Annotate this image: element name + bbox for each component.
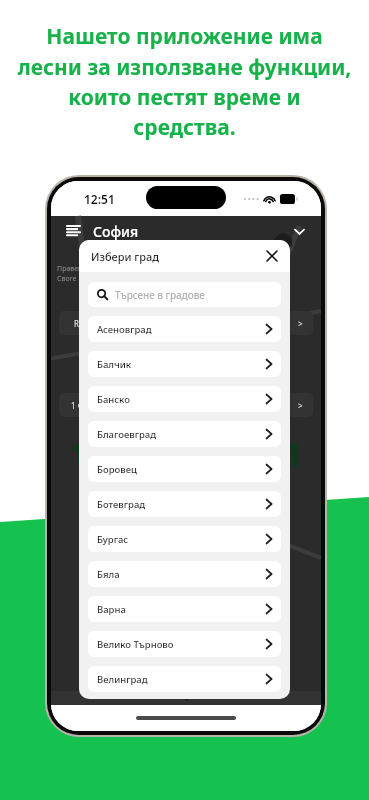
staticText: >: [298, 400, 303, 411]
staticText: Банско: [97, 393, 130, 406]
button[interactable]: Благоевград: [88, 421, 281, 447]
staticText: >: [298, 318, 303, 329]
button[interactable]: Търсене в градове: [88, 282, 281, 307]
button[interactable]: Бяла: [88, 561, 281, 587]
staticText: Боровец: [97, 463, 137, 476]
staticText: Нашето приложение има лесни за използван…: [16, 22, 353, 141]
staticText: Ботевград: [97, 498, 146, 511]
button[interactable]: Ботевград: [88, 491, 281, 517]
button[interactable]: >: [287, 311, 313, 335]
button[interactable]: [132, 347, 240, 381]
staticText: Route: [74, 318, 97, 329]
staticText: Благоевград: [97, 428, 157, 441]
staticText: Своге: [57, 274, 77, 284]
button[interactable]: 1 час: [59, 393, 103, 417]
button[interactable]: Велинград: [88, 666, 281, 692]
staticText: Избери град: [91, 249, 160, 264]
button[interactable]: Бургас: [88, 526, 281, 552]
button[interactable]: Close: [263, 247, 281, 265]
staticText: Балчик: [97, 358, 132, 371]
staticText: Търсене в градове: [115, 288, 205, 302]
button[interactable]: Expand: [289, 221, 309, 241]
button[interactable]: Асеновград: [88, 316, 281, 342]
button[interactable]: Банско: [88, 386, 281, 412]
staticText: 1: [283, 431, 303, 477]
staticText: Велико Търново: [97, 638, 174, 651]
staticText: Правец: [57, 264, 83, 274]
staticText: 12:51: [84, 191, 115, 207]
button[interactable]: Menu: [63, 221, 83, 241]
staticText: Бяла: [97, 568, 120, 581]
staticText: Асеновград: [97, 323, 152, 336]
staticText: Бургас: [97, 533, 129, 546]
staticText: Велинград: [97, 673, 148, 686]
button[interactable]: Варна: [88, 596, 281, 622]
staticText: Варна: [97, 603, 126, 616]
button[interactable]: Балчик: [88, 351, 281, 377]
staticText: София: [93, 222, 139, 241]
staticText: 1: [69, 431, 89, 477]
button[interactable]: Боровец: [88, 456, 281, 482]
button[interactable]: >: [287, 393, 313, 417]
button[interactable]: Велико Търново: [88, 631, 281, 657]
staticText: 1 час: [71, 400, 91, 411]
button[interactable]: Route: [59, 311, 111, 335]
